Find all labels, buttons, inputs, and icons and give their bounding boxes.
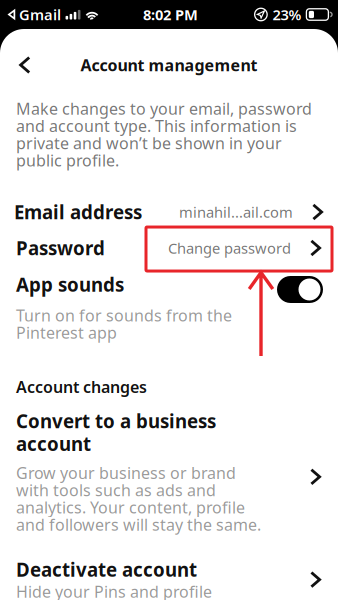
staticText: Hide your Pins and profile (16, 581, 212, 600)
staticText: App sounds (16, 272, 124, 297)
button[interactable]: Convert to a business account (0, 408, 338, 535)
staticText: 8:02 PM (143, 5, 198, 24)
button[interactable]: Email address (0, 194, 338, 230)
staticText: Gmail (19, 5, 61, 24)
staticText: Account changes (16, 376, 147, 397)
staticText: Make changes to your email, password and… (16, 98, 312, 171)
staticText: minahil...ail.com (179, 202, 293, 222)
staticText: Convert to a business account (16, 408, 216, 456)
staticText: Grow your business or brand with tools s… (16, 462, 261, 535)
staticText: Email address (14, 200, 142, 224)
button[interactable]: Back (0, 29, 50, 101)
staticText: Account management (80, 54, 257, 76)
staticText: 23% (272, 5, 301, 24)
button[interactable]: Deactivate account (0, 557, 338, 600)
button[interactable]: Password (0, 230, 338, 266)
staticText: Turn on for sounds from the Pinterest ap… (16, 305, 232, 343)
button[interactable]: App sounds (277, 276, 323, 303)
staticText: Deactivate account (16, 557, 197, 582)
staticText: Change password (168, 238, 291, 258)
staticText: Password (16, 236, 105, 260)
